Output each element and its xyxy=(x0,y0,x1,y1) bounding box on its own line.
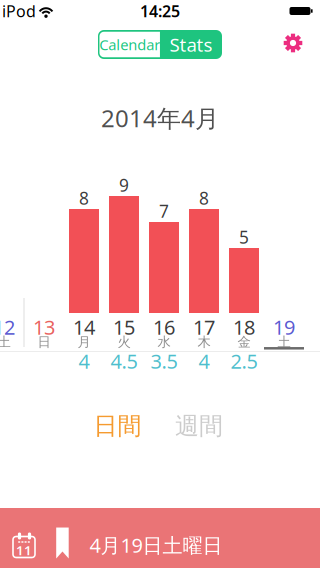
staticText: Stats xyxy=(169,32,212,57)
button[interactable]: 18 xyxy=(224,315,264,349)
staticText: 14:25 xyxy=(140,0,180,22)
staticText: 18 xyxy=(233,314,255,340)
staticText: 日間 xyxy=(93,411,141,441)
staticText: 2014年4月 xyxy=(101,102,219,134)
button[interactable]: 日間 xyxy=(93,411,141,441)
staticText: 16 xyxy=(153,314,175,340)
staticText: 2.5 xyxy=(230,348,257,374)
button[interactable]: Stats xyxy=(160,30,222,59)
button[interactable]: 12 xyxy=(0,315,24,349)
button[interactable]: Calendar xyxy=(11,532,37,558)
staticText: 水 xyxy=(157,334,170,350)
staticText: 17 xyxy=(193,314,215,340)
staticText: 7 xyxy=(159,199,169,222)
staticText: iPod xyxy=(2,0,36,22)
staticText: 12 xyxy=(0,314,15,340)
button[interactable]: 19 xyxy=(264,315,304,349)
staticText: 4月19日土曜日 xyxy=(89,532,222,558)
staticText: Calendar xyxy=(99,35,160,54)
staticText: 土 xyxy=(277,334,290,350)
staticText: 月 xyxy=(77,334,90,350)
button[interactable]: 週間 xyxy=(175,411,223,441)
button[interactable]: 15 xyxy=(104,315,144,349)
staticText: 11 xyxy=(16,541,32,559)
staticText: 火 xyxy=(117,334,130,350)
staticText: 8 xyxy=(199,186,209,209)
staticText: 週間 xyxy=(175,411,223,441)
staticText: 4 xyxy=(198,348,209,374)
button[interactable]: 13 xyxy=(24,315,64,349)
staticText: 8 xyxy=(79,186,89,209)
staticText: 土 xyxy=(0,334,10,350)
button[interactable]: 14 xyxy=(64,315,104,349)
staticText: 19 xyxy=(273,314,295,340)
button[interactable]: Settings xyxy=(282,32,304,54)
staticText: 5 xyxy=(239,225,249,248)
staticText: 13 xyxy=(33,314,55,340)
button[interactable]: Bookmark xyxy=(56,527,69,558)
button[interactable]: 17 xyxy=(184,315,224,349)
staticText: 4 xyxy=(78,348,89,374)
staticText: 4.5 xyxy=(110,348,137,374)
button[interactable]: 16 xyxy=(144,315,184,349)
staticText: 15 xyxy=(113,314,135,340)
staticText: 3.5 xyxy=(150,348,177,374)
staticText: 金 xyxy=(237,334,250,350)
staticText: 9 xyxy=(119,173,129,196)
staticText: 木 xyxy=(197,334,210,350)
staticText: 日 xyxy=(37,334,50,350)
staticText: 14 xyxy=(73,314,95,340)
button[interactable]: Calendar xyxy=(99,32,160,57)
